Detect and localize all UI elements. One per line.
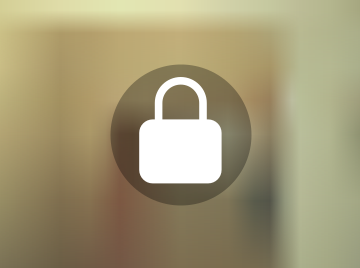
- button[interactable]: Locked photo: [0, 0, 360, 268]
